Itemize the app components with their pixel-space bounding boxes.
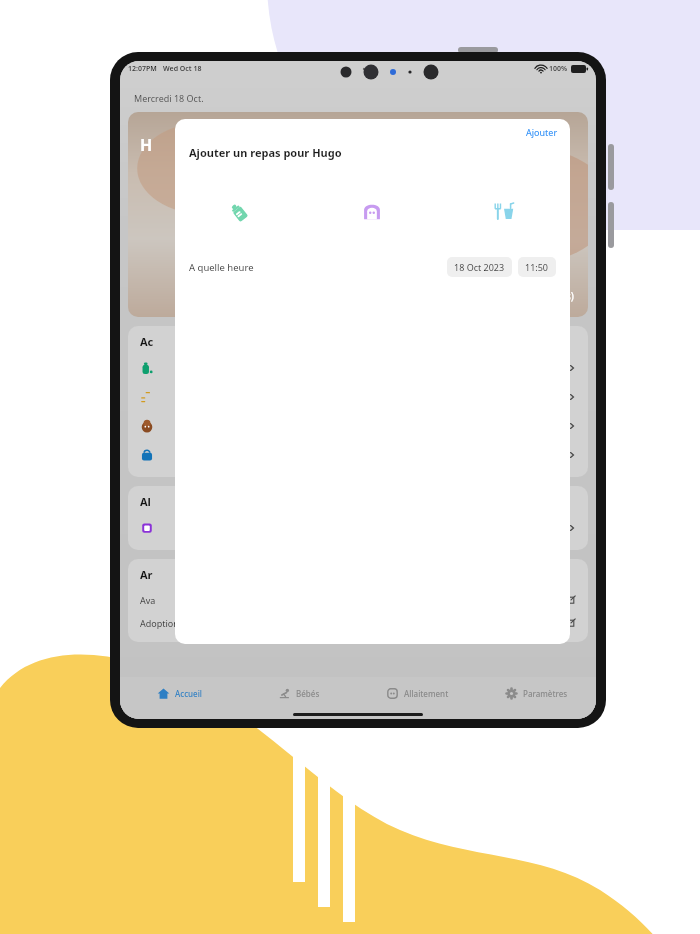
staticText: H (140, 134, 153, 156)
staticText: Ajouter un repas pour Hugo (189, 145, 342, 160)
staticText: A quelle heure (189, 261, 254, 274)
staticText: Ac (140, 334, 154, 349)
button[interactable]: H (128, 112, 588, 317)
button[interactable] (128, 440, 588, 469)
staticText: Wed Oct 18 (163, 64, 202, 74)
button[interactable]: 18 Oct 2023 (447, 257, 512, 277)
staticText: Allaitement (404, 688, 449, 699)
staticText: Mercredi 18 Oct. (134, 92, 204, 104)
button[interactable]: Biberon (222, 192, 260, 230)
button[interactable]: Accueil (120, 677, 239, 709)
button[interactable]: Bébés (239, 677, 358, 709)
staticText: Ar (140, 567, 153, 582)
staticText: 18 Oct 2023 (454, 261, 505, 273)
button[interactable]: Allaitement (353, 192, 391, 230)
button[interactable]: Allaitement (358, 677, 477, 709)
staticText: Al (140, 494, 151, 509)
staticText: Paramètres (523, 688, 568, 699)
staticText: s) (566, 289, 574, 303)
button[interactable]: Ajouter (514, 122, 570, 142)
button[interactable]: Ava (128, 588, 588, 611)
staticText: Ava (140, 594, 156, 606)
button[interactable]: Paramètres (477, 677, 596, 709)
button[interactable]: 11:50 (518, 257, 556, 277)
staticText: Adoption et allaitement (140, 617, 240, 629)
button[interactable] (128, 513, 588, 542)
staticText: 11:50 (525, 261, 549, 273)
other: Ouvrir le lien (567, 618, 576, 627)
other: Ouvrir le lien (567, 595, 576, 604)
button[interactable] (128, 411, 588, 440)
button[interactable] (128, 353, 588, 382)
staticText: 12:07PM (128, 64, 157, 74)
button[interactable]: Adoption et allaitement (128, 611, 588, 634)
button[interactable] (128, 382, 588, 411)
button[interactable]: Repas solide (485, 192, 523, 230)
staticText: Accueil (175, 688, 203, 699)
staticText: Bébés (296, 688, 320, 699)
staticText: 100% (549, 64, 568, 74)
